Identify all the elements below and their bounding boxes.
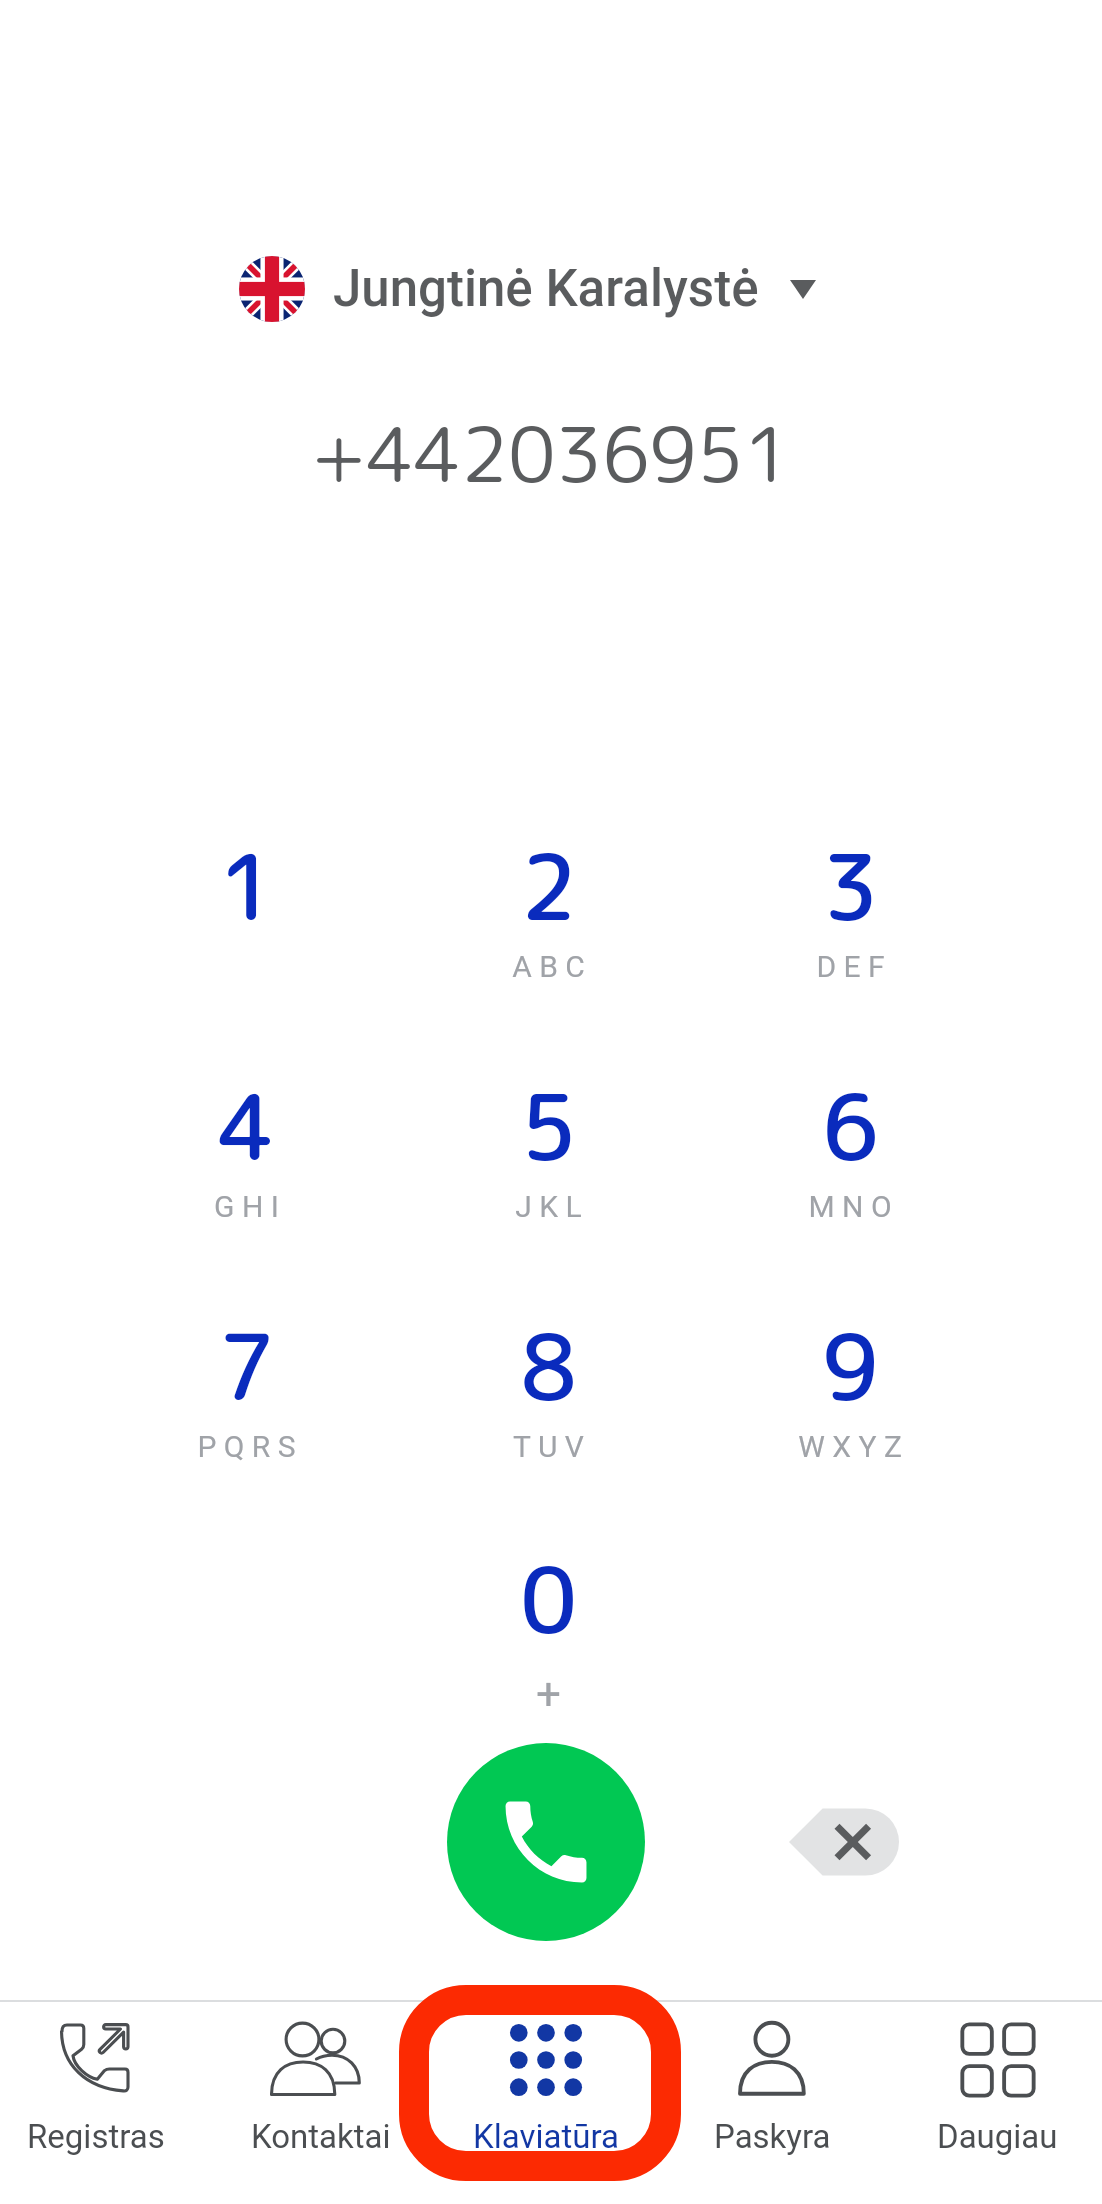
staticText: 8 xyxy=(520,1303,577,1429)
button[interactable]: Daugiau xyxy=(887,2002,1102,2202)
button[interactable]: 7 xyxy=(96,1303,396,1493)
staticText: 0 xyxy=(520,1536,577,1662)
staticText: 2 xyxy=(520,823,577,949)
staticText: + xyxy=(536,1668,561,1720)
staticText: 6 xyxy=(822,1063,879,1189)
staticText: Kontaktai xyxy=(251,2117,391,2156)
staticText: Registras xyxy=(27,2117,165,2156)
button[interactable]: 1 xyxy=(96,823,396,1013)
button[interactable]: Jungtinė Karalystė xyxy=(239,254,816,324)
button[interactable]: Call xyxy=(447,1743,645,1941)
staticText: Jungtinė Karalystė xyxy=(333,259,759,319)
staticText: J K L xyxy=(515,1189,582,1224)
staticText: P Q R S xyxy=(197,1429,296,1464)
button[interactable]: Registras xyxy=(0,2002,206,2202)
staticText: W X Y Z xyxy=(798,1429,902,1464)
staticText: 4 xyxy=(218,1063,275,1189)
staticText: G H I xyxy=(214,1189,279,1224)
button[interactable]: Paskyra xyxy=(662,2002,882,2202)
staticText: D E F xyxy=(816,949,885,984)
staticText: Paskyra xyxy=(714,2117,831,2156)
staticText: 5 xyxy=(520,1063,577,1189)
staticText: 1 xyxy=(218,823,275,949)
staticText: 9 xyxy=(822,1303,879,1429)
staticText: 7 xyxy=(218,1303,275,1429)
staticText: Daugiau xyxy=(937,2117,1058,2156)
button[interactable]: 6 xyxy=(700,1063,1000,1253)
staticText: +442036951 xyxy=(311,400,791,492)
staticText: 3 xyxy=(822,823,879,949)
button[interactable]: Kontaktai xyxy=(211,2002,431,2202)
button[interactable]: 8 xyxy=(398,1303,698,1493)
button[interactable]: Backspace xyxy=(789,1794,899,1890)
button[interactable]: Klaviatūra xyxy=(436,2002,656,2202)
button[interactable]: 0 xyxy=(398,1536,698,1726)
staticText: Klaviatūra xyxy=(473,2117,619,2156)
staticText: T U V xyxy=(513,1429,584,1464)
staticText: M N O xyxy=(808,1189,892,1224)
button[interactable]: 4 xyxy=(96,1063,396,1253)
button[interactable]: 3 xyxy=(700,823,1000,1013)
button[interactable]: 2 xyxy=(398,823,698,1013)
button[interactable]: 9 xyxy=(700,1303,1000,1493)
staticText: A B C xyxy=(512,949,585,984)
button[interactable]: 5 xyxy=(398,1063,698,1253)
